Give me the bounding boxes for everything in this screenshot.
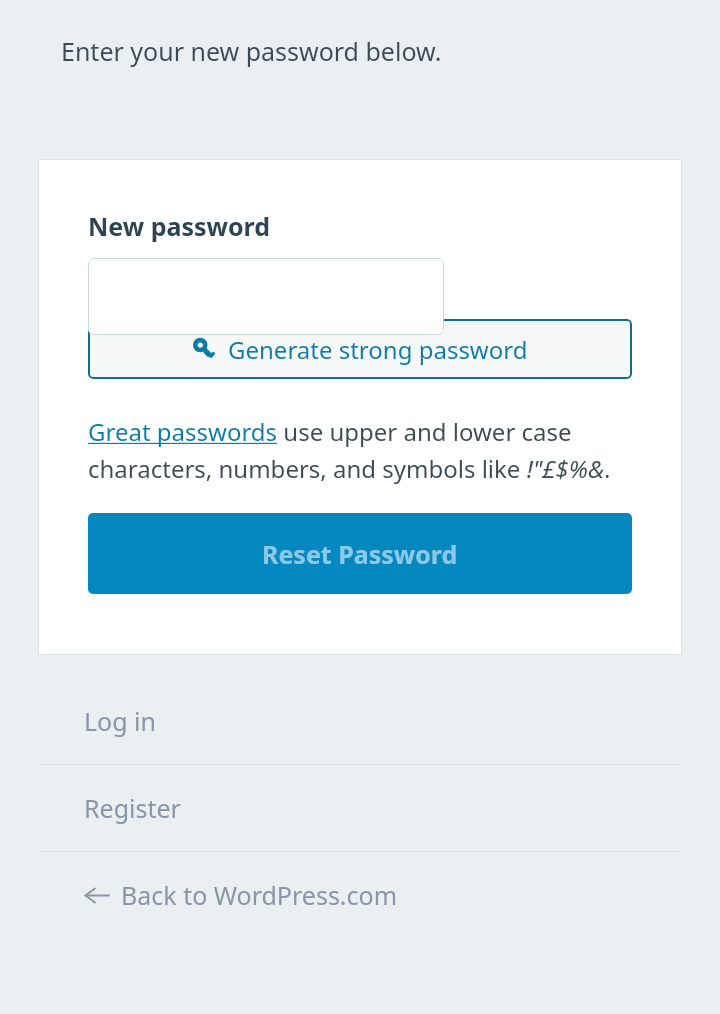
staticText: Generate strong password [228,333,528,366]
staticText: Reset Password [262,537,458,571]
button[interactable]: Log in [0,678,720,764]
staticText: Back to WordPress.com [121,878,398,912]
button[interactable]: New password input [88,258,444,335]
staticText: Register [84,791,181,825]
staticText: New password [88,209,271,243]
button[interactable]: Reset Password [88,513,632,594]
staticText: Enter your new password below. [61,34,442,68]
button[interactable]: Generate strong password [88,319,632,379]
button[interactable]: Back to WordPress.com [0,852,720,938]
staticText: Log in [84,704,157,738]
staticText: Great passwords use upper and lower case… [88,415,632,485]
button[interactable]: Register [0,765,720,851]
